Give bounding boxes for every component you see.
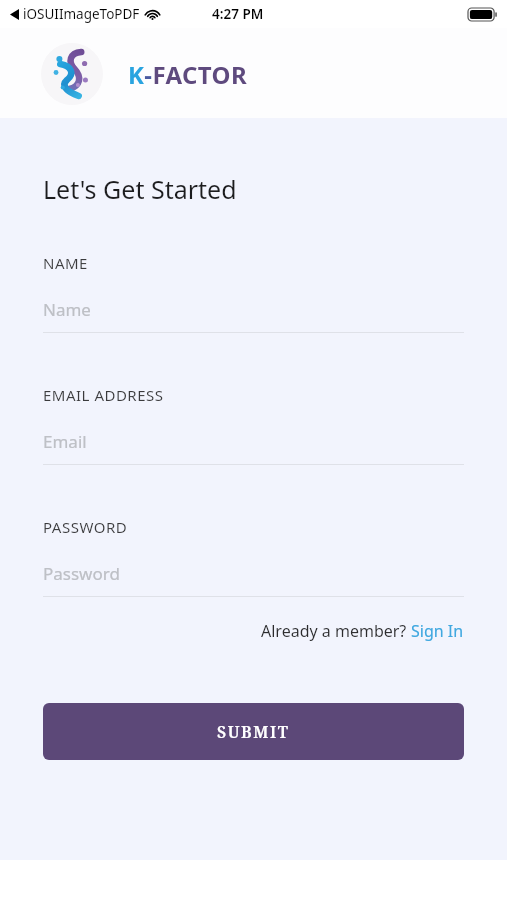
staticText: Already a member? bbox=[261, 620, 411, 642]
staticText: Name bbox=[43, 298, 91, 321]
button[interactable]: Name bbox=[43, 298, 464, 321]
button[interactable]: Password bbox=[43, 562, 464, 585]
other: K-Factor logo bbox=[41, 43, 103, 105]
staticText: Let's Get Started bbox=[43, 172, 237, 206]
staticText: EMAIL ADDRESS bbox=[43, 385, 164, 405]
staticText: K-FACTOR bbox=[128, 58, 248, 91]
staticText: Password bbox=[43, 562, 120, 585]
button[interactable]: Email bbox=[43, 430, 464, 453]
staticText: Sign In bbox=[411, 620, 464, 642]
staticText: NAME bbox=[43, 253, 88, 273]
staticText: Email bbox=[43, 430, 87, 453]
button[interactable]: SUBMIT bbox=[43, 703, 464, 760]
staticText: PASSWORD bbox=[43, 517, 128, 537]
staticText: iOSUIImageToPDF bbox=[23, 5, 140, 23]
staticText: 4:27 PM bbox=[212, 5, 264, 23]
staticText: SUBMIT bbox=[217, 721, 290, 743]
button[interactable]: Sign In bbox=[411, 620, 464, 642]
